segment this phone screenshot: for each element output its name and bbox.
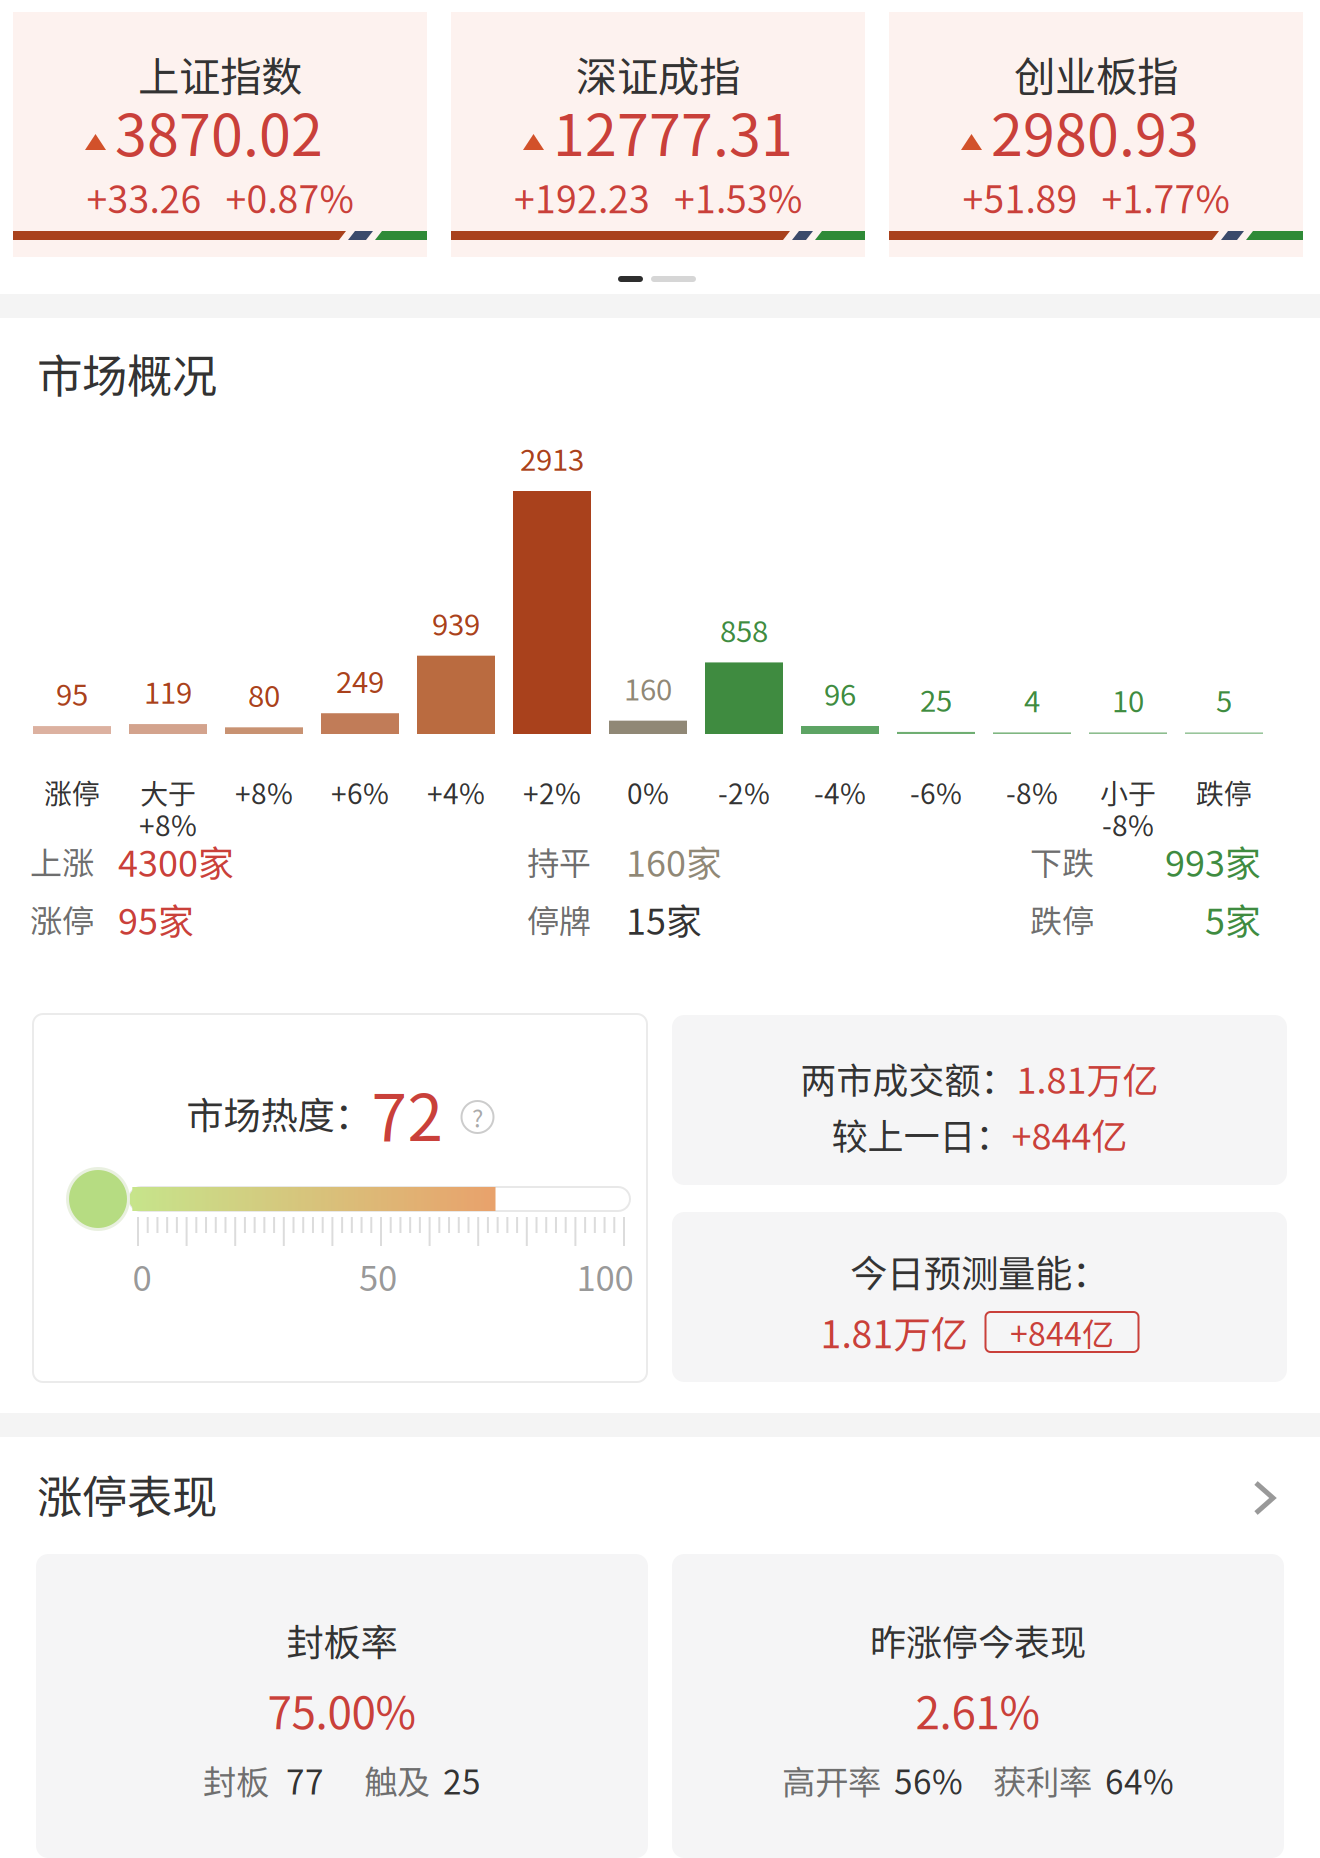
staticText: +1.53%: [674, 170, 802, 224]
staticText: 两市成交额：: [800, 1052, 1016, 1104]
staticText: 160家: [626, 835, 722, 887]
staticText: 跌停: [1030, 896, 1094, 942]
staticText: +51.89: [962, 170, 1077, 224]
staticText: 75.00%: [267, 1678, 416, 1742]
staticText: 56%: [894, 1756, 963, 1804]
staticText: 50: [359, 1251, 397, 1301]
staticText: 2.61%: [915, 1678, 1040, 1742]
staticText: +192.23: [514, 170, 650, 224]
staticText: +2%: [523, 772, 581, 812]
staticText: 4300家: [118, 835, 234, 887]
staticText: 4: [1024, 678, 1040, 721]
staticText: +844亿: [1011, 1108, 1127, 1160]
staticText: 跌停: [1196, 772, 1252, 812]
staticText: 涨停: [30, 896, 94, 942]
staticText: 72: [371, 1067, 443, 1159]
staticText: +6%: [331, 772, 389, 812]
staticText: 持平: [527, 838, 591, 884]
staticText: 5: [1216, 678, 1232, 721]
staticText: 0: [132, 1251, 151, 1301]
staticText: 高开率: [782, 1756, 881, 1804]
staticText: 停牌: [527, 896, 591, 942]
staticText: 3870.02: [115, 89, 323, 172]
staticText: 993家: [1165, 835, 1261, 887]
button[interactable]: 涨停表现 详情: [0, 0, 1320, 1858]
staticText: 25: [443, 1756, 481, 1804]
staticText: -6%: [910, 772, 962, 812]
staticText: 80: [248, 673, 280, 716]
staticText: 1.81万亿: [820, 1305, 967, 1359]
staticText: 77: [286, 1756, 324, 1804]
staticText: 1.81万亿: [1016, 1052, 1158, 1104]
staticText: +4%: [427, 772, 485, 812]
staticText: 249: [336, 659, 384, 701]
staticText: 深证成指: [576, 44, 740, 104]
staticText: +8%: [139, 804, 197, 844]
staticText: 2980.93: [991, 89, 1199, 172]
staticText: 15家: [626, 893, 702, 945]
staticText: 昨涨停今表现: [870, 1614, 1086, 1666]
staticText: 95家: [118, 893, 194, 945]
button[interactable]: 上证指数: [13, 12, 427, 257]
button[interactable]: 深证成指: [451, 12, 865, 257]
staticText: 创业板指: [1014, 44, 1178, 104]
staticText: +8%: [235, 772, 293, 812]
staticText: 119: [144, 670, 192, 712]
button[interactable]: 创业板指: [889, 12, 1303, 257]
staticText: 今日预测量能：: [850, 1244, 1109, 1298]
staticText: 下跌: [1030, 838, 1094, 884]
staticText: 160: [624, 666, 672, 709]
staticText: 12777.31: [553, 89, 793, 172]
staticText: 25: [920, 678, 952, 720]
button[interactable]: 昨涨停今表现: [0, 0, 1320, 1858]
staticText: 858: [720, 608, 768, 651]
staticText: -2%: [718, 772, 770, 812]
button[interactable]: 两市成交额：: [0, 0, 1320, 1858]
staticText: 10: [1112, 678, 1144, 721]
staticText: 2913: [520, 437, 584, 479]
staticText: 64%: [1105, 1756, 1174, 1804]
staticText: 封板: [203, 1756, 269, 1804]
staticText: 939: [432, 601, 480, 644]
staticText: 5家: [1205, 893, 1261, 945]
staticText: 上涨: [30, 838, 94, 884]
staticText: 市场概况: [37, 340, 217, 406]
staticText: 获利率: [993, 1756, 1092, 1804]
staticText: 95: [56, 672, 88, 714]
staticText: 较上一日：: [831, 1108, 1011, 1160]
button[interactable]: 封板率: [0, 0, 1320, 1858]
staticText: ?: [472, 1100, 483, 1134]
staticText: 封板率: [286, 1613, 397, 1667]
staticText: 0%: [627, 772, 669, 812]
staticText: +844亿: [1010, 1309, 1114, 1355]
staticText: 触及: [364, 1756, 430, 1804]
staticText: 小于: [1100, 772, 1156, 812]
staticText: -4%: [814, 772, 866, 812]
staticText: 大于: [140, 772, 196, 812]
staticText: 涨停: [44, 772, 100, 812]
staticText: 上证指数: [138, 44, 302, 104]
staticText: +1.77%: [1101, 170, 1229, 224]
staticText: 涨停表现: [37, 1461, 217, 1527]
staticText: -8%: [1102, 804, 1154, 844]
staticText: 市场热度：: [186, 1086, 371, 1140]
staticText: 100: [576, 1251, 633, 1301]
staticText: +33.26: [86, 170, 201, 224]
staticText: -8%: [1006, 772, 1058, 812]
staticText: 96: [824, 672, 856, 714]
button[interactable]: 今日预测量能：: [0, 0, 1320, 1858]
staticText: +0.87%: [225, 170, 353, 224]
